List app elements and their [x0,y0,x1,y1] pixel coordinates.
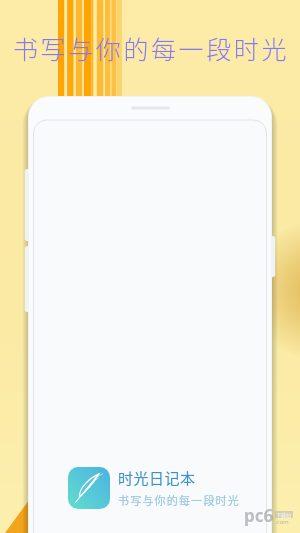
staticText: 时光日记本 [118,467,196,489]
staticText: .com [275,518,289,526]
staticText: 下载站 [276,511,292,518]
staticText: 书写与你的每一段时光 [13,30,290,66]
staticText: pc6 [244,504,274,527]
staticText: 书写与你的每一段时光 [118,492,240,508]
other: 时光日记本 app icon [68,467,110,509]
button[interactable]: 时光日记本 app icon [68,467,240,509]
